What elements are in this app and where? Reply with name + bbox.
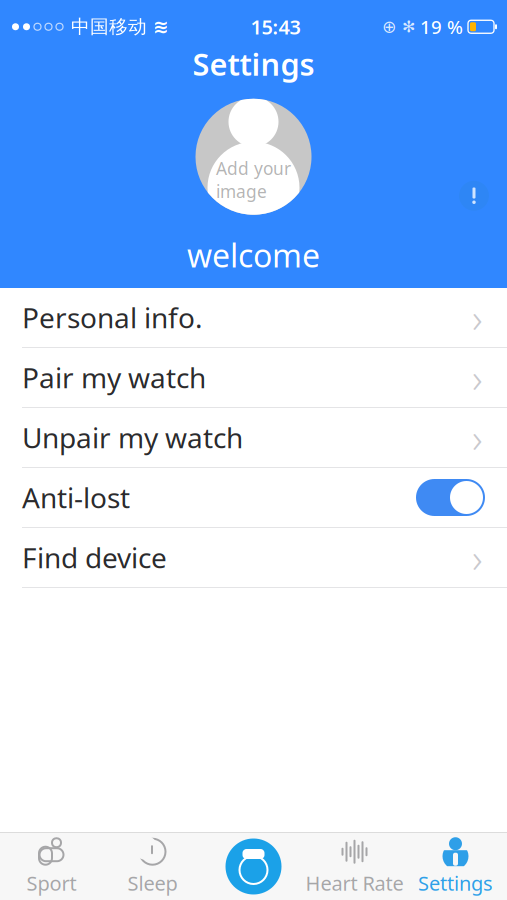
staticText: › [472, 291, 483, 344]
button[interactable]: Unpair my watch [0, 408, 507, 467]
button[interactable]: Information [459, 181, 489, 211]
staticText: Sport [26, 870, 76, 896]
button[interactable]: Personal info. [0, 288, 507, 347]
button[interactable]: Sleep [102, 833, 203, 900]
button[interactable]: Device [203, 833, 304, 900]
staticText: Add your image [216, 157, 291, 203]
staticText: 中国移动 [71, 15, 147, 38]
staticText: Personal info. [22, 299, 203, 336]
button[interactable]: Settings [405, 833, 506, 900]
staticText: › [472, 411, 483, 464]
staticText: Settings [418, 870, 493, 896]
button[interactable]: Sport [1, 833, 102, 900]
staticText: Pair my watch [22, 359, 206, 396]
staticText: › [472, 531, 483, 584]
staticText: Settings [192, 43, 314, 84]
staticText: ✻ [402, 18, 415, 36]
staticText: 19 % [420, 14, 463, 39]
staticText: Find device [22, 539, 167, 576]
staticText: 15:43 [250, 13, 300, 40]
staticText: Heart Rate [305, 870, 403, 896]
staticText: welcome [187, 234, 320, 276]
button[interactable]: Heart Rate [304, 833, 405, 900]
staticText: › [472, 351, 483, 404]
button[interactable]: Find device [0, 528, 507, 587]
button[interactable]: Pair my watch [0, 348, 507, 407]
button[interactable]: Add your image [195, 99, 311, 215]
staticText: ≋ [153, 16, 169, 37]
button[interactable]: Anti-lost [0, 468, 507, 527]
staticText: Sleep [127, 870, 177, 896]
staticText: Anti-lost [22, 479, 130, 516]
staticText: ⊕ [382, 17, 397, 37]
staticText: Unpair my watch [22, 419, 243, 456]
